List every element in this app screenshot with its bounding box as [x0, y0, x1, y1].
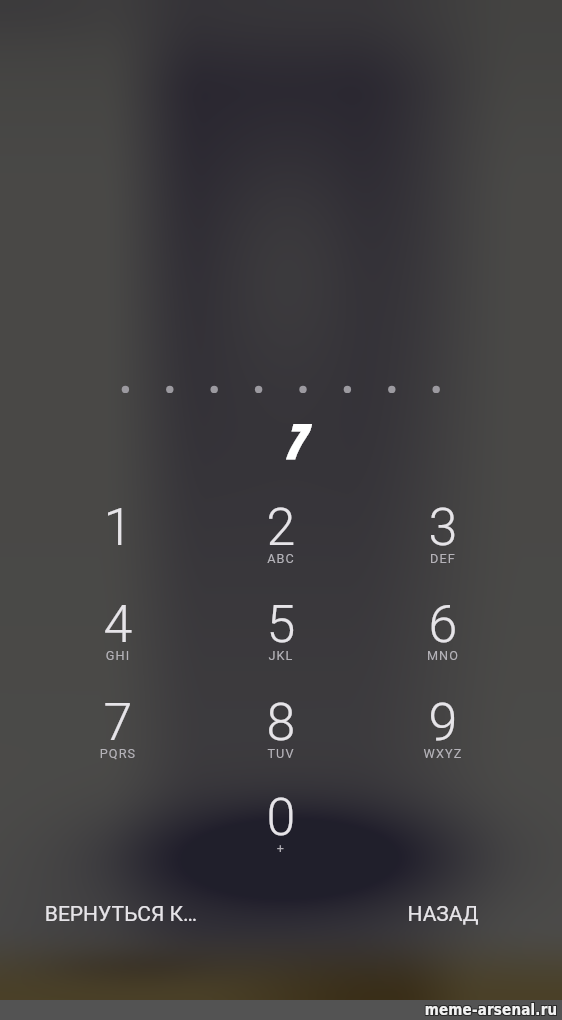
- staticText: ВЕРНУТЬСЯ К…: [1, 902, 241, 927]
- staticText: 3: [353, 497, 533, 558]
- staticText: +: [191, 841, 371, 856]
- staticText: meme-arsenal.ru: [421, 1002, 562, 1019]
- staticText: 2: [191, 497, 371, 558]
- staticText: meme-arsenal.ru: [420, 1001, 562, 1018]
- staticText: meme-arsenal.ru: [419, 1000, 561, 1017]
- button[interactable]: Key 1: [63, 484, 173, 568]
- staticText: DEF: [353, 551, 533, 566]
- button[interactable]: Key 4: [63, 582, 173, 666]
- button[interactable]: Key 8: [226, 679, 336, 763]
- staticText: 0: [191, 787, 371, 848]
- button[interactable]: Key 3: [388, 484, 498, 568]
- staticText: MNO: [353, 648, 533, 663]
- staticText: meme-arsenal.ru: [421, 1000, 562, 1017]
- button[interactable]: Key 2: [226, 484, 336, 568]
- staticText: 8: [191, 692, 371, 753]
- staticText: 7: [28, 692, 208, 753]
- staticText: 7: [204, 412, 384, 472]
- button[interactable]: Key 6: [388, 582, 498, 666]
- button[interactable]: Key 5: [226, 582, 336, 666]
- staticText: JKL: [191, 648, 371, 663]
- staticText: TUV: [191, 746, 371, 761]
- staticText: PQRS: [28, 746, 208, 761]
- button[interactable]: [388, 893, 498, 939]
- button[interactable]: Key 7: [63, 679, 173, 763]
- staticText: meme-arsenal.ru: [421, 1001, 562, 1018]
- staticText: meme-arsenal.ru: [419, 1001, 561, 1018]
- button[interactable]: Key 9: [388, 679, 498, 763]
- button[interactable]: [30, 893, 216, 939]
- staticText: ABC: [191, 551, 371, 566]
- staticText: meme-arsenal.ru: [420, 1000, 562, 1017]
- staticText: WXYZ: [353, 746, 533, 761]
- staticText: 4: [28, 594, 208, 655]
- staticText: 9: [353, 692, 533, 753]
- staticText: НАЗАД: [353, 902, 533, 927]
- staticText: 5: [191, 594, 371, 655]
- staticText: 6: [353, 594, 533, 655]
- staticText: meme-arsenal.ru: [419, 1002, 561, 1019]
- button[interactable]: Key 0: [226, 775, 336, 859]
- staticText: GHI: [28, 648, 208, 663]
- staticText: 1: [28, 497, 208, 558]
- staticText: meme-arsenal.ru: [420, 1002, 562, 1019]
